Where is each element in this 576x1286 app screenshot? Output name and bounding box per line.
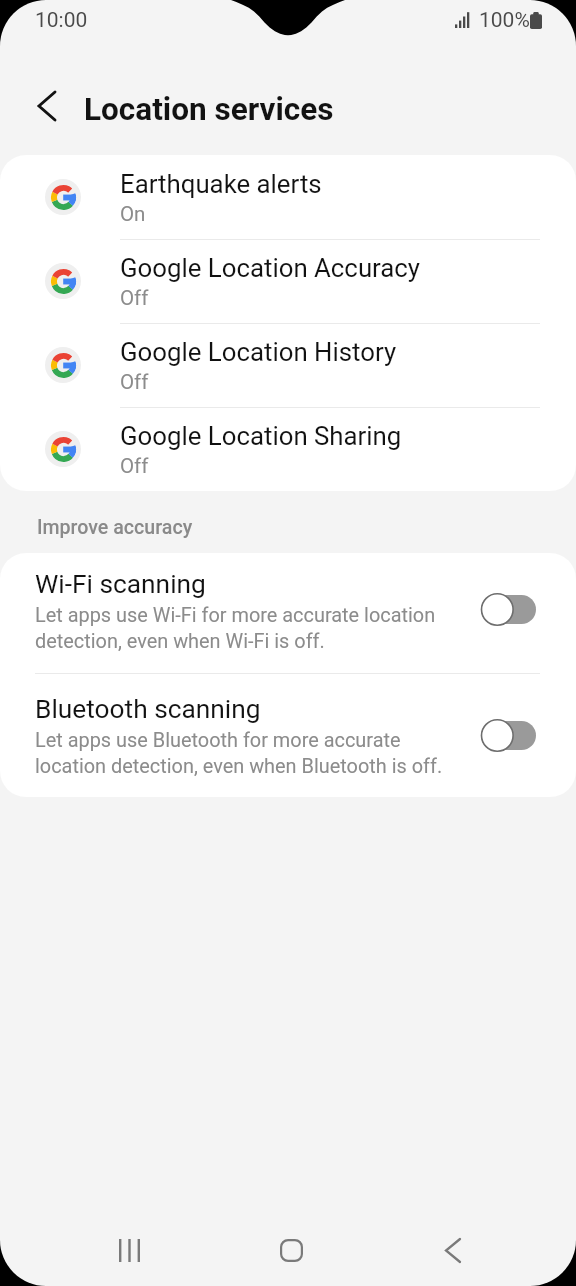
staticText: Off <box>120 454 149 478</box>
button[interactable]: Off <box>481 593 536 626</box>
button[interactable]: Wi-Fi scanning <box>0 553 576 673</box>
staticText: 100% <box>479 8 530 33</box>
staticText: Bluetooth scanning <box>35 694 261 725</box>
button[interactable]: Bluetooth scanning <box>0 673 576 797</box>
button[interactable]: Google Location Accuracy <box>0 239 576 323</box>
button[interactable]: Off <box>481 719 536 752</box>
staticText: Location services <box>84 91 334 128</box>
staticText: Let apps use Bluetooth for more accurate… <box>35 729 443 778</box>
button[interactable]: Earthquake alerts <box>0 155 576 239</box>
button[interactable]: Recent apps <box>49 1214 210 1286</box>
staticText: 10:00 <box>35 8 88 33</box>
staticText: Google Location Sharing <box>120 421 402 451</box>
staticText: Let apps use Wi-Fi for more accurate loc… <box>35 604 436 653</box>
staticText: Off <box>120 286 149 310</box>
button[interactable]: Google Location History <box>0 323 576 407</box>
staticText: Improve accuracy <box>37 516 193 539</box>
staticText: Google Location History <box>120 337 397 367</box>
button[interactable]: Back <box>372 1214 534 1286</box>
button[interactable]: Google Location Sharing <box>0 407 576 491</box>
staticText: Wi-Fi scanning <box>35 569 206 600</box>
button[interactable]: Home <box>210 1214 372 1286</box>
staticText: Google Location Accuracy <box>120 253 421 283</box>
staticText: On <box>120 202 146 226</box>
staticText: Earthquake alerts <box>120 169 322 199</box>
staticText: Off <box>120 370 149 394</box>
button[interactable]: Back <box>26 85 68 127</box>
